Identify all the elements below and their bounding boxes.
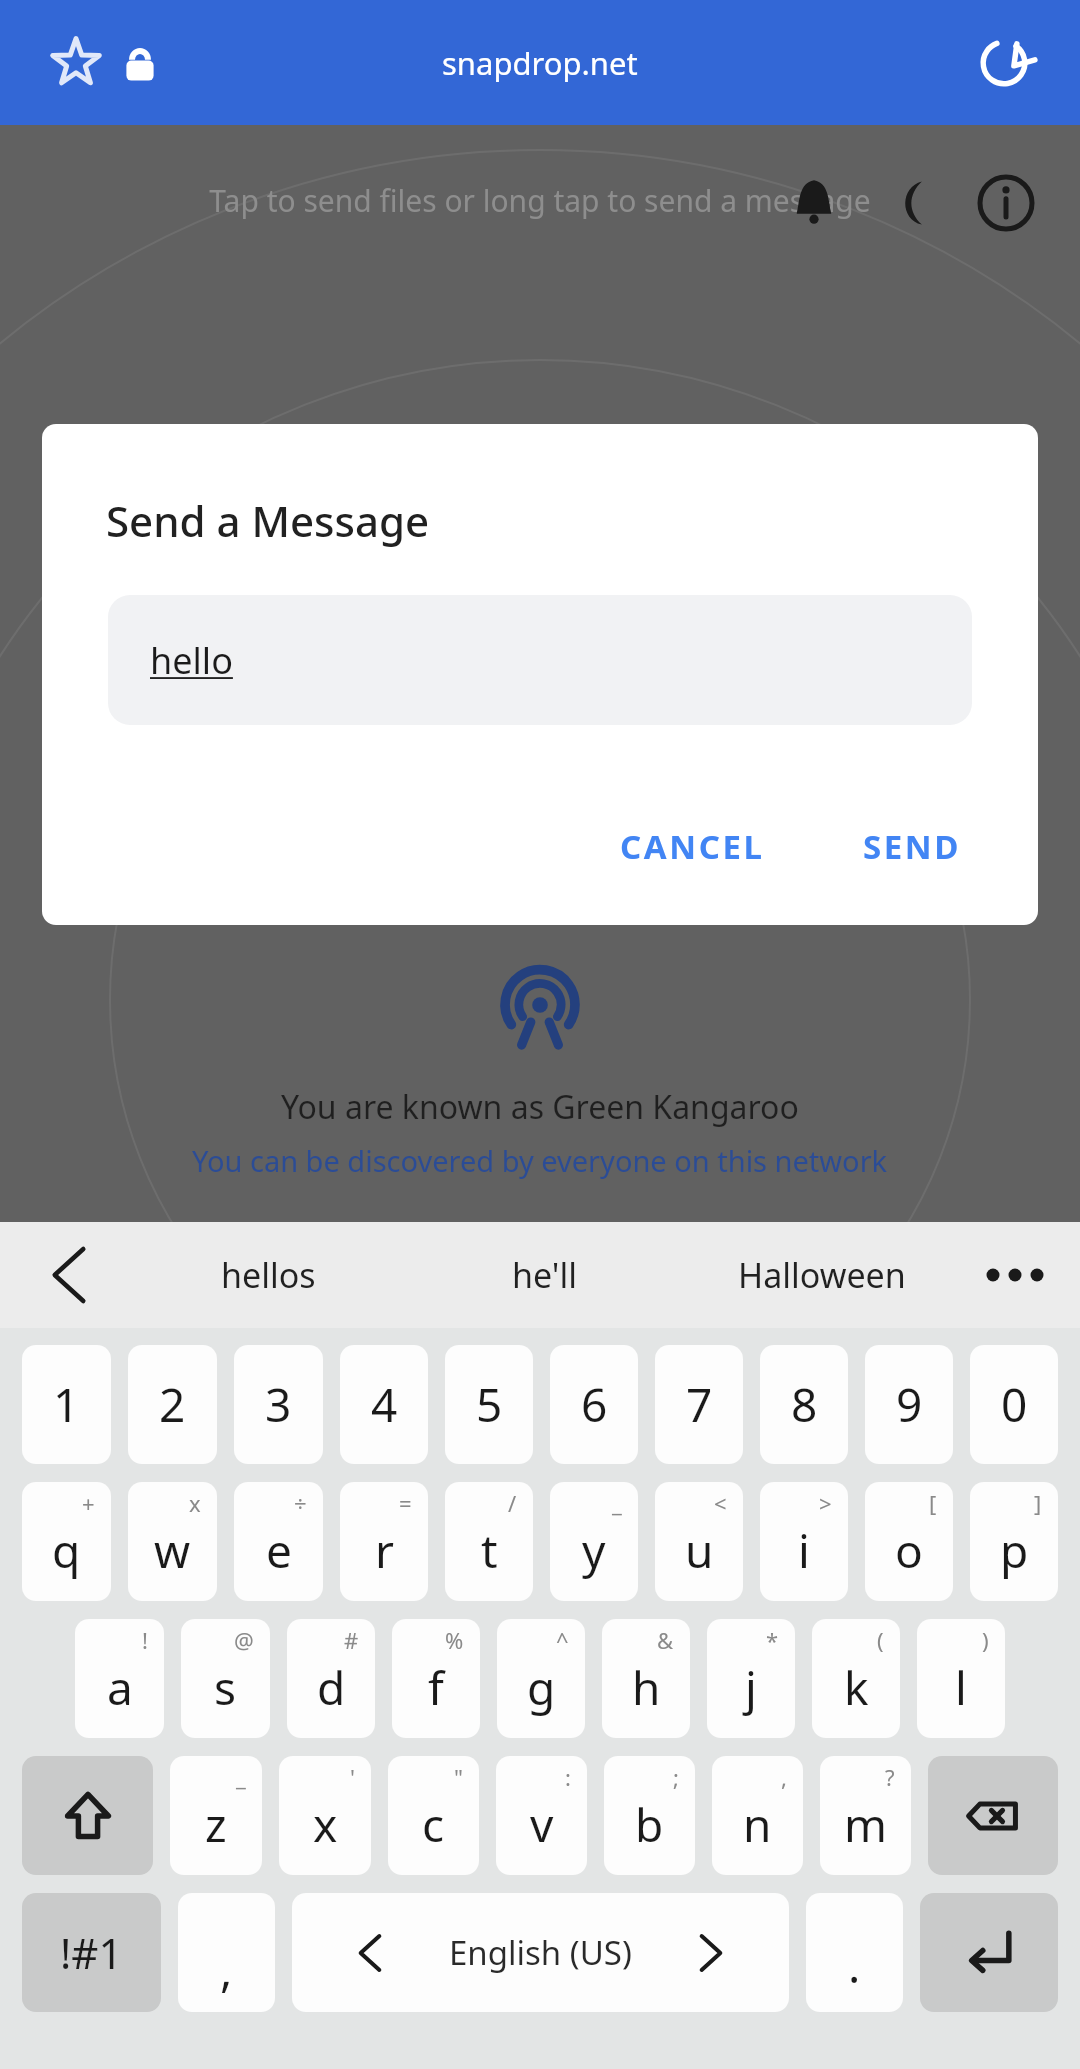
button[interactable]: > [760,1482,848,1601]
staticText: s [214,1656,237,1719]
staticText: z [205,1793,227,1856]
staticText: , [220,1938,233,2001]
button[interactable]: More suggestions [972,1232,1058,1318]
button[interactable]: ) [917,1619,1005,1738]
staticText: , [781,1762,787,1792]
button[interactable]: SEND [837,804,988,889]
staticText: y [582,1519,606,1582]
button[interactable]: Bookmark [40,27,112,99]
button[interactable]: , [712,1756,803,1875]
staticText: % [445,1625,464,1655]
staticText: ) [982,1625,989,1655]
button[interactable]: _ [550,1482,638,1601]
staticText: : [565,1762,571,1792]
staticText: = [399,1488,412,1518]
staticText: Tap to send files or long tap to send a … [0,180,1080,221]
staticText: & [657,1625,674,1655]
button[interactable]: 6 [550,1345,638,1464]
button[interactable]: _ [170,1756,262,1875]
staticText: o [895,1519,923,1582]
button[interactable]: Reload [968,27,1040,99]
staticText: f [428,1656,444,1719]
button[interactable]: & [602,1619,690,1738]
button[interactable]: he'll [406,1222,683,1328]
staticText: r [375,1519,394,1582]
button[interactable]: 9 [865,1345,953,1464]
button[interactable]: 1 [22,1345,111,1464]
button[interactable]: , [178,1893,275,2012]
button[interactable]: CANCEL [594,804,791,889]
button[interactable]: Secure connection [112,35,168,91]
staticText: _ [236,1762,246,1792]
staticText: < [714,1488,727,1518]
button[interactable]: @ [181,1619,270,1738]
staticText: ; [673,1762,679,1792]
staticText: v [530,1793,554,1856]
button[interactable]: Backspace [928,1756,1058,1875]
button[interactable]: ÷ [234,1482,323,1601]
button[interactable]: ' [279,1756,371,1875]
button[interactable]: hello [108,595,972,725]
button[interactable]: [ [865,1482,953,1601]
staticText: [ [929,1488,937,1518]
button[interactable]: 3 [234,1345,323,1464]
button[interactable]: English (US) [292,1893,789,2012]
button[interactable]: " [388,1756,479,1875]
staticText: 6 [581,1373,608,1436]
button[interactable]: 8 [760,1345,848,1464]
button[interactable]: Dark mode [862,155,958,251]
button[interactable]: Shift [22,1756,153,1875]
button[interactable]: About [958,155,1054,251]
staticText: 5 [476,1373,503,1436]
staticText: hello [150,636,233,685]
button[interactable]: hellos [130,1222,406,1328]
button[interactable]: . [806,1893,903,2012]
staticText: . [848,1934,861,1997]
button[interactable]: # [287,1619,375,1738]
staticText: ÷ [294,1488,307,1518]
button[interactable]: 5 [445,1345,533,1464]
staticText: h [632,1656,661,1719]
button[interactable]: ] [970,1482,1058,1601]
staticText: Halloween [738,1252,906,1298]
staticText: he'll [512,1252,578,1298]
button[interactable]: ; [604,1756,695,1875]
button[interactable]: ^ [497,1619,585,1738]
button[interactable]: < [655,1482,743,1601]
staticText: snapdrop.net [442,42,638,84]
button[interactable]: 7 [655,1345,743,1464]
button[interactable]: ! [75,1619,164,1738]
staticText: 3 [265,1373,292,1436]
button[interactable]: + [22,1482,111,1601]
staticText: d [317,1656,346,1719]
staticText: * [766,1625,779,1655]
button[interactable]: Previous suggestions [26,1232,112,1318]
button[interactable]: : [496,1756,587,1875]
staticText: a [107,1656,133,1719]
staticText: x [313,1793,338,1856]
staticText: x [189,1488,201,1518]
button[interactable]: 4 [340,1345,428,1464]
staticText: + [82,1488,95,1518]
button[interactable]: ( [812,1619,900,1738]
staticText: ' [350,1762,355,1792]
button[interactable]: * [707,1619,795,1738]
button[interactable]: = [340,1482,428,1601]
button[interactable]: / [445,1482,533,1601]
staticText: t [481,1519,498,1582]
button[interactable]: Notifications [766,155,862,251]
button[interactable]: Enter [920,1893,1058,2012]
button[interactable]: ? [820,1756,911,1875]
staticText: English (US) [449,1930,632,1975]
button[interactable]: x [128,1482,217,1601]
button[interactable]: !#1 [22,1893,161,2012]
button[interactable]: 2 [128,1345,217,1464]
button[interactable]: 0 [970,1345,1058,1464]
staticText: ( [877,1625,884,1655]
staticText: CANCEL [620,824,765,869]
button[interactable]: Halloween [683,1222,960,1328]
staticText: @ [234,1625,254,1655]
staticText: j [745,1656,757,1719]
button[interactable]: % [392,1619,480,1738]
staticText: ^ [556,1625,569,1655]
